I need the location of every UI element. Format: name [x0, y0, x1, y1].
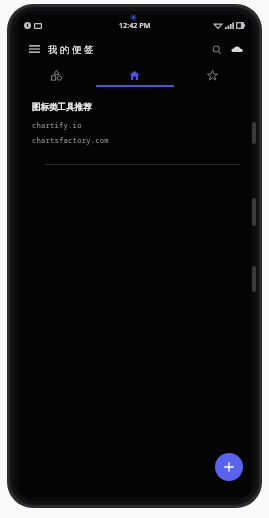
staticText: chartify.io: [32, 120, 82, 130]
button[interactable]: Home: [95, 63, 173, 93]
button[interactable]: Search: [207, 40, 226, 59]
button[interactable]: chartsfactory.com: [18, 134, 251, 146]
button[interactable]: Categories: [18, 63, 95, 93]
staticText: 12:42 PM: [119, 20, 151, 30]
button[interactable]: Favorites: [173, 63, 251, 93]
button[interactable]: Cloud sync: [227, 40, 246, 59]
staticText: 图标类工具推荐: [32, 102, 92, 113]
staticText: chartsfactory.com: [32, 135, 109, 145]
button[interactable]: chartify.io: [18, 119, 251, 131]
button[interactable]: Menu: [24, 39, 44, 59]
button[interactable]: Add note: [215, 453, 243, 481]
staticText: 我 的 便 签: [48, 43, 94, 56]
